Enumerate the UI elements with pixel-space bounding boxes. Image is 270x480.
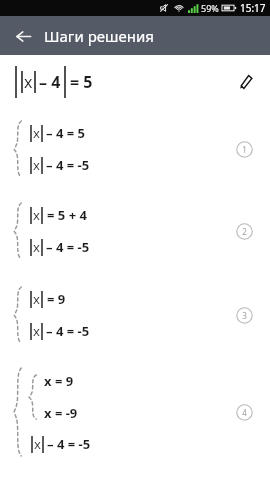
staticText: x	[33, 124, 40, 142]
staticText: – 4 = -5	[46, 322, 90, 340]
staticText: Шаги решения	[44, 26, 154, 46]
staticText: x	[34, 435, 41, 453]
staticText: x	[33, 206, 40, 224]
staticText: x = -9	[44, 404, 78, 422]
button[interactable]: 4	[236, 404, 253, 421]
button[interactable]: Back	[8, 21, 38, 51]
staticText: x	[24, 71, 33, 93]
staticText: 4	[242, 407, 247, 418]
staticText: = 5	[70, 71, 93, 93]
button[interactable]: x	[0, 109, 270, 189]
staticText: x	[33, 322, 40, 340]
button[interactable]: x	[0, 273, 270, 357]
staticText: x	[33, 238, 40, 256]
staticText: = 5 + 4	[47, 206, 87, 224]
button[interactable]: 2	[236, 223, 253, 240]
button[interactable]: 3	[236, 307, 253, 324]
staticText: 59%	[201, 2, 219, 14]
staticText: – 4 = -5	[47, 435, 91, 453]
staticText: x = 9	[44, 372, 74, 390]
staticText: x	[33, 156, 40, 174]
staticText: 1	[242, 144, 247, 155]
staticText: x	[33, 290, 40, 308]
staticText: = 9	[47, 290, 66, 308]
button[interactable]: x	[0, 189, 270, 273]
button[interactable]: x = 9	[0, 357, 270, 467]
staticText: 2	[242, 226, 247, 237]
staticText: – 4	[39, 71, 61, 93]
button[interactable]: Edit	[230, 67, 260, 97]
staticText: 3	[242, 310, 247, 321]
staticText: – 4 = -5	[46, 238, 90, 256]
staticText: – 4 = -5	[46, 156, 90, 174]
button[interactable]: 1	[236, 141, 253, 158]
staticText: 15:17	[240, 1, 266, 15]
staticText: – 4 = 5	[46, 124, 85, 142]
